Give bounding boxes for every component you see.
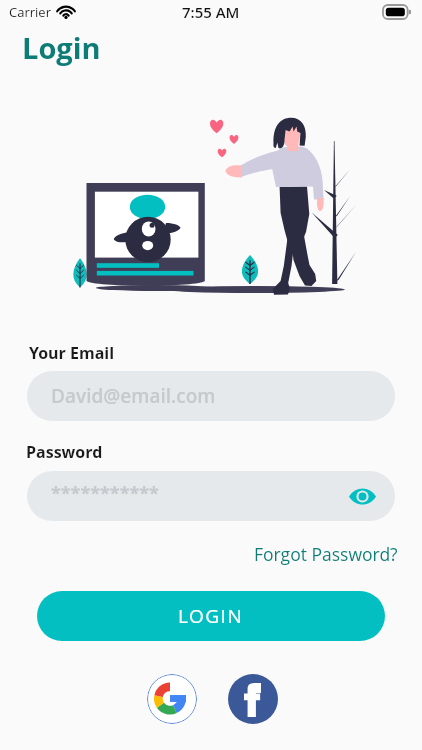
button[interactable]: *********** xyxy=(27,471,395,521)
staticText: LOGIN xyxy=(178,603,244,629)
button[interactable]: Show password xyxy=(344,478,381,515)
staticText: Carrier xyxy=(9,3,51,21)
button[interactable]: LOGIN xyxy=(37,591,385,641)
staticText: Password xyxy=(26,441,103,463)
staticText: *********** xyxy=(51,481,159,506)
staticText: David@email.com xyxy=(51,383,216,409)
button[interactable]: Forgot Password? xyxy=(252,540,400,568)
button[interactable]: David@email.com xyxy=(27,371,395,421)
staticText: 7:55 AM xyxy=(182,2,240,22)
button[interactable]: Sign in with Google xyxy=(147,674,197,724)
button[interactable]: Sign in with Facebook xyxy=(228,674,278,724)
staticText: Your Email xyxy=(29,342,115,364)
staticText: Forgot Password? xyxy=(254,542,398,566)
staticText: Login xyxy=(22,28,101,67)
